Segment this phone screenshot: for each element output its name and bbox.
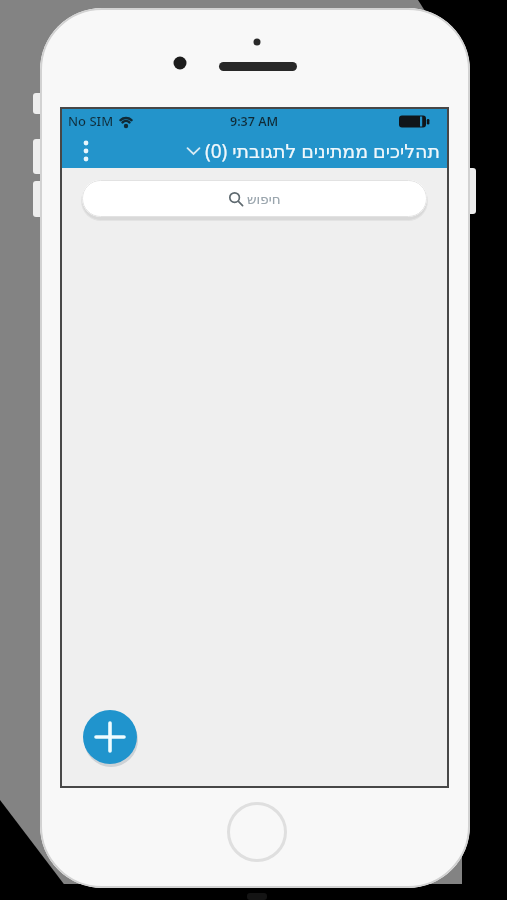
staticText: תהליכים ממתינים לתגובתי (0) [205,138,440,164]
staticText: No SIM [68,112,114,130]
staticText: חיפוש [247,191,281,207]
button[interactable] [74,139,98,163]
staticText: 9:37 AM [230,113,279,130]
button[interactable]: חיפוש [82,180,427,217]
button[interactable] [83,710,137,764]
button[interactable]: תהליכים ממתינים לתגובתי (0) [187,138,440,164]
